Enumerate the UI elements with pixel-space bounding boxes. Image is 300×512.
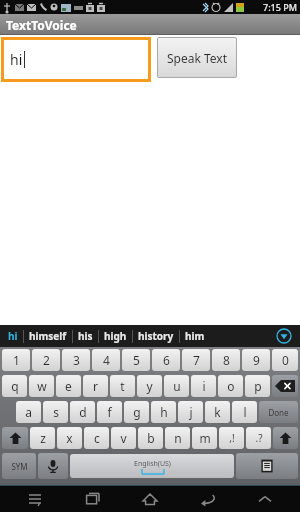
button[interactable]: SYM xyxy=(2,453,36,479)
staticText: q xyxy=(11,378,19,394)
button[interactable]: hi xyxy=(4,40,148,79)
button[interactable]: b xyxy=(138,427,163,449)
button[interactable]: hi xyxy=(3,325,23,347)
button[interactable]: y xyxy=(137,375,162,397)
button[interactable]: a xyxy=(16,401,41,423)
button[interactable]: Done xyxy=(259,401,298,423)
button[interactable]: 4 xyxy=(92,349,120,371)
button[interactable]: v xyxy=(111,427,136,449)
staticText: Done xyxy=(268,407,289,418)
button[interactable]: 6 xyxy=(152,349,180,371)
staticText: s xyxy=(53,404,59,420)
staticText: r xyxy=(93,378,98,394)
button[interactable]: e xyxy=(56,375,81,397)
button[interactable]: w xyxy=(29,375,54,397)
staticText: g xyxy=(133,404,141,420)
staticText: a xyxy=(25,404,32,420)
staticText: p xyxy=(254,378,262,394)
button[interactable]: ,! xyxy=(219,427,244,449)
button[interactable]: Hide keyboard xyxy=(243,485,287,512)
button[interactable]: g xyxy=(124,401,149,423)
button[interactable]: Shift xyxy=(2,427,28,449)
staticText: h xyxy=(160,404,168,420)
button[interactable]: x xyxy=(57,427,82,449)
button[interactable]: 3 xyxy=(62,349,90,371)
staticText: x xyxy=(66,430,73,446)
button[interactable]: 8 xyxy=(212,349,240,371)
button[interactable]: Recent apps xyxy=(71,485,115,512)
button[interactable]: k xyxy=(205,401,230,423)
staticText: Speak Text xyxy=(167,50,228,66)
button[interactable]: l xyxy=(232,401,257,423)
button[interactable]: c xyxy=(84,427,109,449)
button[interactable]: i xyxy=(191,375,216,397)
button[interactable]: j xyxy=(178,401,203,423)
staticText: hi xyxy=(10,50,23,69)
button[interactable]: Clipboard xyxy=(236,453,298,479)
button[interactable]: him xyxy=(180,325,210,347)
staticText: l xyxy=(243,404,247,420)
staticText: high xyxy=(104,329,127,343)
staticText: ,! xyxy=(229,431,235,445)
button[interactable]: himself xyxy=(24,325,72,347)
staticText: w xyxy=(37,378,47,394)
staticText: 0 xyxy=(282,352,289,368)
button[interactable]: Expand suggestions xyxy=(276,328,292,344)
button[interactable]: 9 xyxy=(242,349,270,371)
staticText: 6 xyxy=(163,352,170,368)
staticText: y xyxy=(146,378,153,394)
staticText: hi xyxy=(8,329,18,343)
button[interactable]: m xyxy=(192,427,217,449)
button[interactable]: o xyxy=(218,375,243,397)
button[interactable]: Space xyxy=(70,454,234,478)
staticText: .? xyxy=(255,431,263,445)
staticText: English(US) xyxy=(134,459,171,469)
staticText: u xyxy=(173,378,181,394)
button[interactable]: Shift right xyxy=(273,427,298,449)
staticText: himself xyxy=(29,329,67,343)
button[interactable]: Speak Text xyxy=(157,37,237,78)
staticText: o xyxy=(227,378,235,394)
button[interactable]: Menu xyxy=(13,485,57,512)
staticText: history xyxy=(138,329,174,343)
button[interactable]: 7 xyxy=(182,349,210,371)
staticText: c xyxy=(94,430,100,446)
staticText: 9 xyxy=(253,352,260,368)
button[interactable]: Home xyxy=(128,485,172,512)
staticText: 2 xyxy=(43,352,50,368)
button[interactable]: his xyxy=(73,325,98,347)
button[interactable]: history xyxy=(133,325,179,347)
staticText: k xyxy=(214,404,221,420)
staticText: z xyxy=(40,430,46,446)
button[interactable]: 5 xyxy=(122,349,150,371)
button[interactable]: u xyxy=(164,375,189,397)
staticText: 8 xyxy=(223,352,230,368)
staticText: d xyxy=(79,404,87,420)
button[interactable]: n xyxy=(165,427,190,449)
button[interactable]: z xyxy=(30,427,55,449)
staticText: 3 xyxy=(73,352,80,368)
button[interactable]: 0 xyxy=(272,349,298,371)
button[interactable]: p xyxy=(245,375,270,397)
button[interactable]: high xyxy=(99,325,132,347)
staticText: SYM xyxy=(11,461,28,472)
button[interactable]: q xyxy=(2,375,27,397)
staticText: t xyxy=(120,378,125,394)
button[interactable]: .? xyxy=(246,427,271,449)
staticText: v xyxy=(120,430,127,446)
staticText: 5 xyxy=(133,352,140,368)
button[interactable]: 2 xyxy=(32,349,60,371)
staticText: 1 xyxy=(13,352,20,368)
button[interactable]: Voice input xyxy=(38,453,68,479)
button[interactable]: h xyxy=(151,401,176,423)
button[interactable]: Backspace xyxy=(272,375,298,397)
button[interactable]: r xyxy=(83,375,108,397)
button[interactable]: s xyxy=(43,401,68,423)
button[interactable]: Back xyxy=(185,485,229,512)
button[interactable]: 1 xyxy=(2,349,30,371)
staticText: j xyxy=(189,404,193,420)
staticText: him xyxy=(185,329,205,343)
button[interactable]: d xyxy=(70,401,95,423)
button[interactable]: t xyxy=(110,375,135,397)
button[interactable]: f xyxy=(97,401,122,423)
